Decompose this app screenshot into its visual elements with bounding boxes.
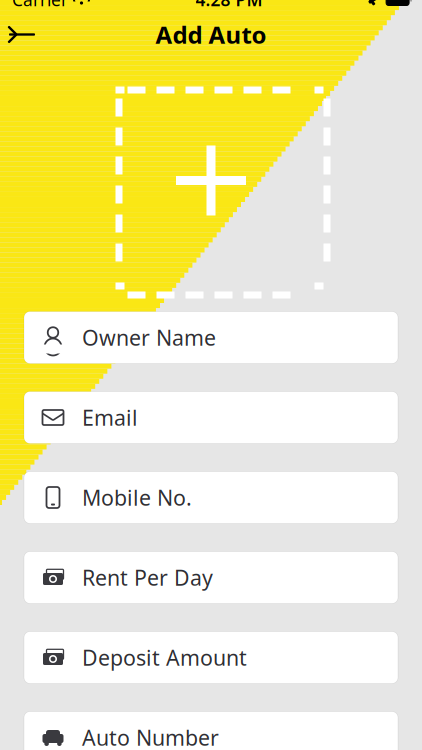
staticText: Mobile No. [82,483,192,512]
staticText: 4:28 PM [195,0,262,11]
button[interactable]: Auto Number [24,711,398,750]
button[interactable]: Email [24,391,398,443]
staticText: Carrier [12,0,68,11]
staticText: Add Auto [155,19,266,50]
staticText: Auto Number [82,723,219,750]
button[interactable]: Owner Name [24,311,398,363]
staticText: Deposit Amount [82,643,247,672]
button[interactable]: Rent Per Day [24,551,398,603]
staticText: Email [82,403,138,432]
button[interactable]: Add photo [103,74,318,286]
button[interactable]: Back [0,12,44,56]
button[interactable]: Deposit Amount [24,631,398,683]
button[interactable]: Mobile No. [24,471,398,523]
staticText: Owner Name [82,323,216,352]
staticText: Rent Per Day [82,563,213,592]
